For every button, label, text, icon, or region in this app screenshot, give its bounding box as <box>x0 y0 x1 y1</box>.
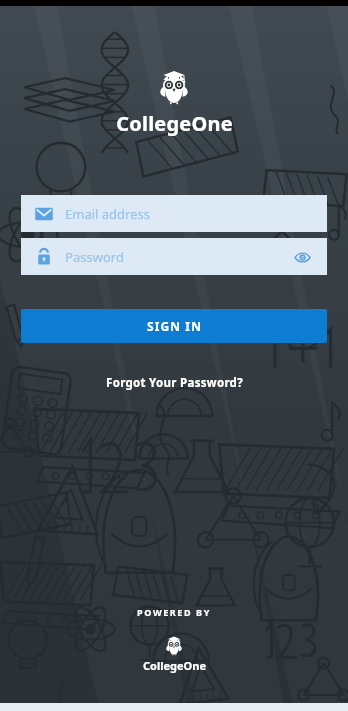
button[interactable]: Password <box>21 238 327 275</box>
button[interactable]: Show password <box>289 244 315 270</box>
staticText: Password <box>65 248 124 266</box>
button[interactable]: Forgot Your Password? <box>96 372 253 394</box>
staticText: CollegeOne <box>116 110 233 137</box>
staticText: Forgot Your Password? <box>106 375 243 391</box>
button[interactable]: Email address <box>21 195 327 232</box>
button[interactable]: SIGN IN <box>21 309 327 343</box>
staticText: Email address <box>65 205 150 223</box>
staticText: CollegeOne <box>143 658 206 673</box>
staticText: POWERED BY <box>137 606 211 618</box>
staticText: SIGN IN <box>147 318 202 334</box>
